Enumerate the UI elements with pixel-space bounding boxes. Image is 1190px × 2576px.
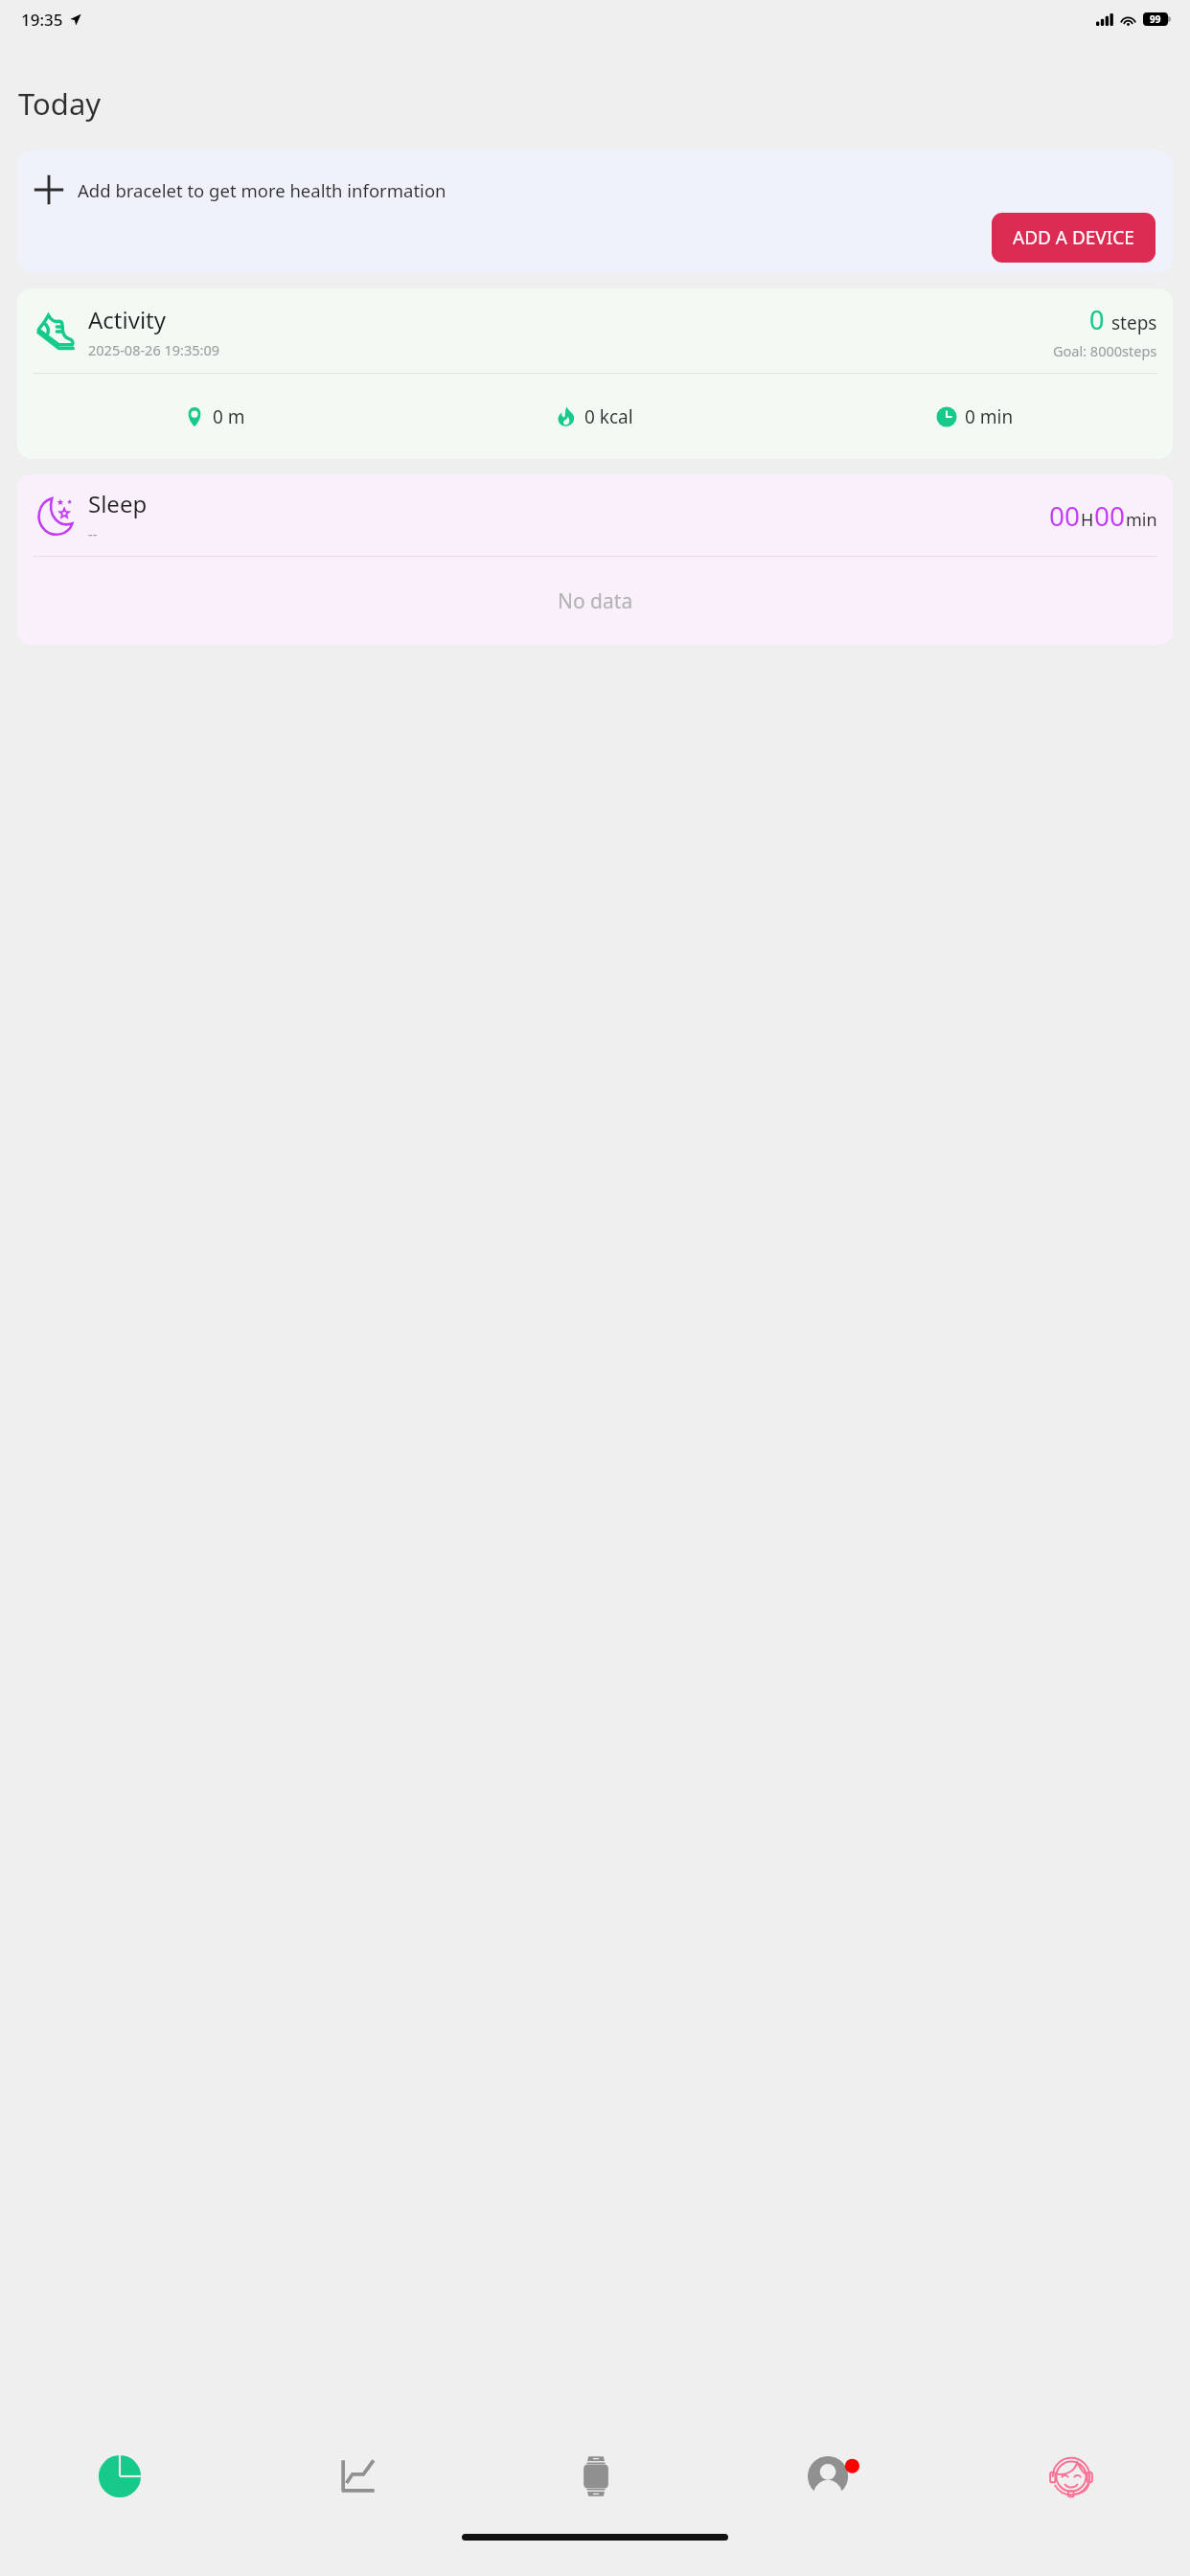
- button[interactable]: Sleep: [17, 474, 1173, 645]
- button[interactable]: Add bracelet to get more health informat…: [17, 150, 1173, 273]
- staticText: 2025-08-26 19:35:09: [88, 340, 219, 359]
- staticText: Sleep: [88, 488, 148, 519]
- button[interactable]: Trends: [239, 2426, 477, 2526]
- button[interactable]: Reports: [0, 2426, 239, 2526]
- staticText: min: [1126, 508, 1157, 532]
- staticText: 19:35: [21, 9, 63, 31]
- button[interactable]: ADD A DEVICE: [992, 213, 1156, 263]
- staticText: 0 min: [965, 404, 1014, 429]
- staticText: steps: [1111, 310, 1157, 335]
- button[interactable]: Support: [952, 2426, 1190, 2526]
- button[interactable]: Device: [477, 2426, 715, 2526]
- staticText: ADD A DEVICE: [1013, 225, 1134, 250]
- staticText: 00: [1049, 497, 1081, 534]
- staticText: 00: [1094, 497, 1126, 534]
- staticText: 0: [1089, 302, 1105, 337]
- staticText: H: [1081, 508, 1094, 532]
- staticText: 99: [1150, 12, 1161, 26]
- staticText: --: [88, 524, 98, 543]
- button[interactable]: Profile: [715, 2426, 952, 2526]
- staticText: 0 m: [213, 404, 245, 429]
- staticText: Activity: [88, 304, 166, 335]
- staticText: Goal: 8000steps: [1053, 341, 1157, 360]
- button[interactable]: Activity: [17, 288, 1173, 459]
- staticText: 0 kcal: [584, 404, 633, 429]
- staticText: Add bracelet to get more health informat…: [78, 178, 446, 202]
- staticText: No data: [558, 587, 633, 615]
- staticText: Today: [18, 83, 102, 124]
